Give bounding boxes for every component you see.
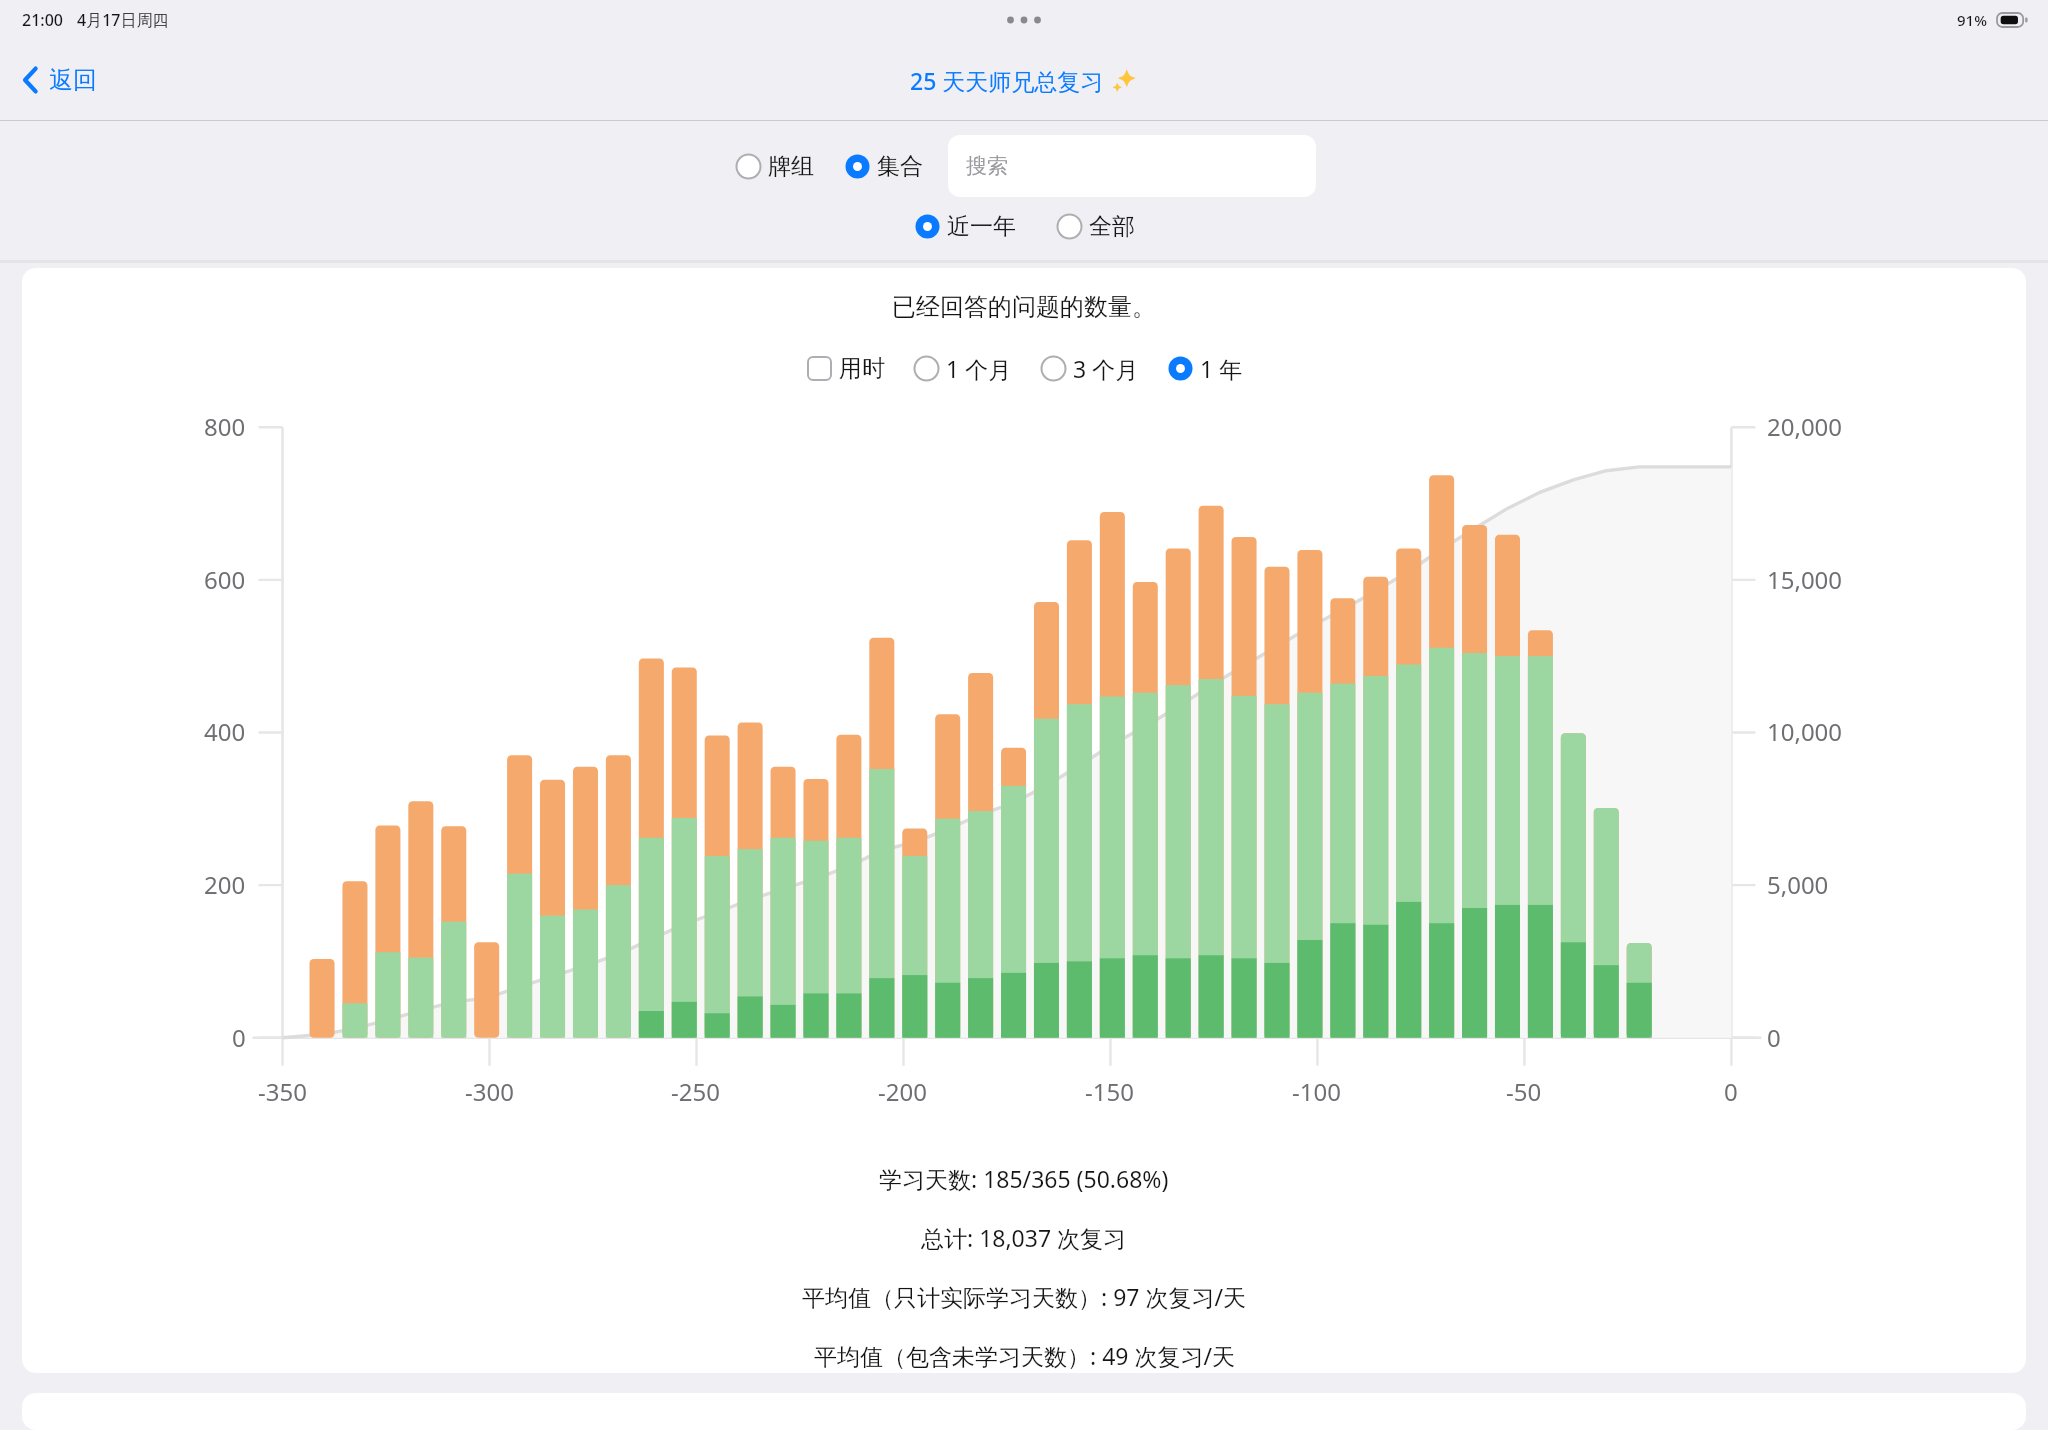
staticText: 返回 (49, 65, 97, 95)
staticText: 1 个月 (946, 353, 1012, 384)
staticText: 20,000 (1767, 410, 1843, 443)
staticText: 5,000 (1767, 868, 1829, 901)
staticText: 近一年 (947, 212, 1016, 241)
staticText: 平均值（包含未学习天数）: 49 次复习/天 (814, 1340, 1235, 1371)
button[interactable]: 用时 (803, 351, 888, 386)
staticText: -350 (258, 1075, 307, 1108)
button[interactable]: 牌组 (732, 149, 817, 184)
staticText: 800 (204, 410, 246, 443)
staticText: 91% (1957, 10, 1987, 30)
staticText: 3 个月 (1073, 353, 1139, 384)
staticText: 0 (232, 1021, 246, 1054)
button[interactable]: 搜索 (948, 135, 1316, 197)
button[interactable]: 1 个月 (910, 350, 1015, 387)
staticText: 用时 (839, 354, 885, 383)
staticText: -250 (671, 1075, 720, 1108)
staticText: 10,000 (1767, 715, 1843, 748)
staticText: 总计: 18,037 次复习 (921, 1222, 1127, 1253)
staticText: 400 (204, 715, 246, 748)
staticText: 15,000 (1767, 563, 1843, 596)
button[interactable]: 25 天天师兄总复习 (900, 59, 1148, 102)
staticText: -200 (878, 1075, 927, 1108)
staticText: 全部 (1089, 212, 1135, 241)
staticText: 0 (1724, 1075, 1738, 1108)
staticText: -150 (1085, 1075, 1134, 1108)
staticText: 200 (204, 868, 246, 901)
staticText: -300 (465, 1075, 514, 1108)
staticText: 牌组 (768, 152, 814, 181)
button[interactable]: 全部 (1053, 209, 1138, 244)
staticText: 4月17日周四 (77, 9, 169, 31)
staticText: 平均值（只计实际学习天数）: 97 次复习/天 (802, 1281, 1246, 1312)
staticText: 25 天天师兄总复习 (910, 65, 1110, 96)
staticText: -100 (1292, 1075, 1341, 1108)
staticText: 1 年 (1200, 353, 1243, 384)
button[interactable]: 集合 (841, 149, 926, 184)
staticText: 搜索 (966, 153, 1008, 179)
button[interactable]: 1 年 (1164, 350, 1246, 387)
button[interactable]: 返回 (14, 57, 105, 103)
staticText: 学习天数: 185/365 (50.68%) (879, 1163, 1169, 1194)
staticText: 21:00 (22, 9, 63, 31)
staticText: 集合 (877, 152, 923, 181)
staticText: 已经回答的问题的数量。 (892, 292, 1156, 322)
staticText: 0 (1767, 1021, 1781, 1054)
button[interactable]: 3 个月 (1037, 350, 1142, 387)
staticText: 600 (204, 563, 246, 596)
button[interactable]: 近一年 (911, 209, 1019, 244)
staticText: -50 (1506, 1075, 1542, 1108)
